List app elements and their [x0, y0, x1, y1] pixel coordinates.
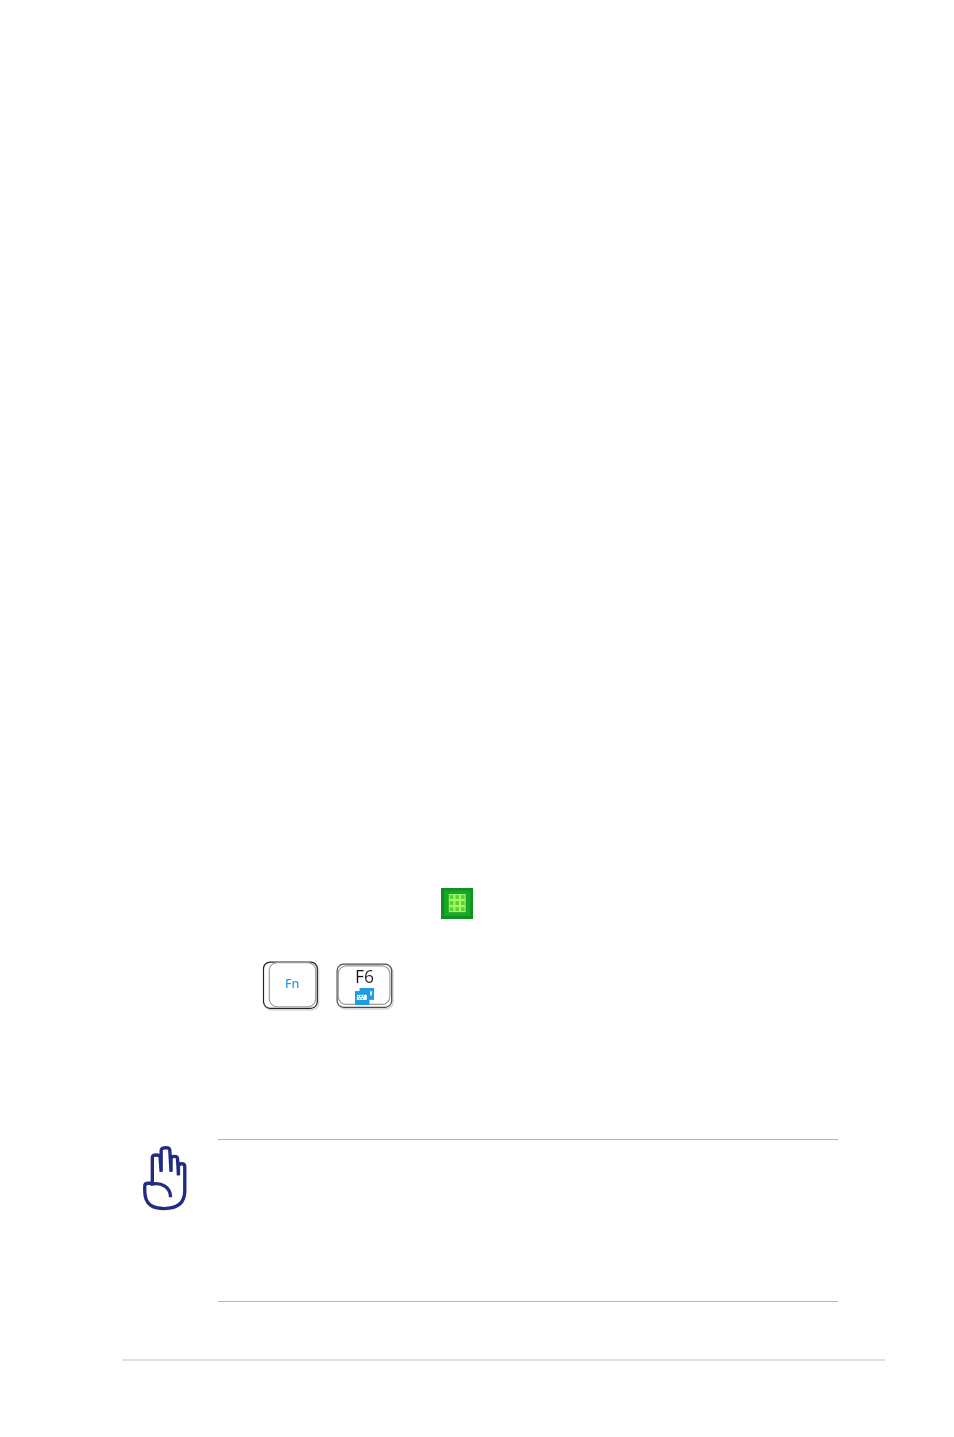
staticText: Fn — [285, 975, 300, 992]
other: Important note — [141, 1145, 189, 1210]
button[interactable]: F6 — [336, 962, 394, 1010]
staticText: F6 — [355, 964, 375, 988]
button[interactable]: Fn — [262, 960, 320, 1011]
button[interactable]: Numeric keypad indicator — [441, 888, 473, 919]
